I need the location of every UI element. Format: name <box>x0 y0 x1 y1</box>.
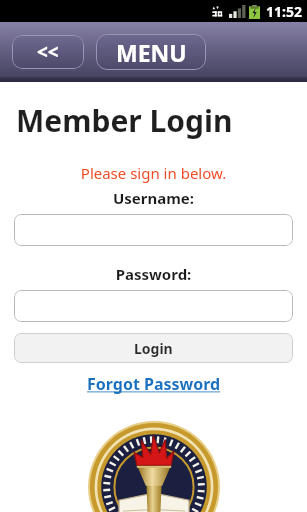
button[interactable]: Text field <box>14 214 293 246</box>
staticText: Username: <box>0 188 307 208</box>
staticText: Password: <box>0 264 307 284</box>
button[interactable]: Back <box>12 35 84 69</box>
staticText: << <box>37 39 59 65</box>
button[interactable]: Login <box>14 333 293 363</box>
staticText: Member Login <box>16 100 233 141</box>
staticText: Forgot Password <box>87 373 221 395</box>
staticText: Login <box>134 339 173 358</box>
staticText: Please sign in below. <box>0 163 307 183</box>
staticText: MENU <box>116 37 187 68</box>
staticText: 11:52 <box>266 2 302 21</box>
button[interactable]: MENU <box>96 34 206 70</box>
button[interactable]: Text field <box>14 290 293 322</box>
button[interactable]: Forgot Password <box>87 373 221 395</box>
